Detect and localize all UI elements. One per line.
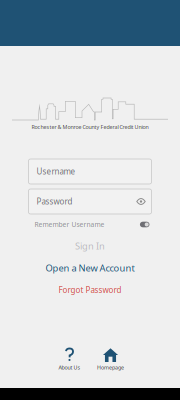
staticText: Forgot Password [58, 285, 121, 295]
button[interactable]: About Us [49, 348, 90, 370]
staticText: Password [36, 196, 72, 207]
button[interactable]: Remember Username [28, 221, 151, 228]
staticText: Open a New Account [45, 262, 134, 274]
staticText: Sign In [75, 240, 105, 252]
button[interactable]: Homepage [90, 348, 131, 370]
staticText: Remember Username [34, 220, 104, 229]
staticText: Homepage [97, 364, 124, 371]
button[interactable]: Forgot Password [28, 285, 151, 295]
button[interactable]: Password [28, 189, 151, 214]
button[interactable]: Username [28, 159, 151, 184]
staticText: Username [36, 166, 75, 177]
button[interactable]: Open a New Account [28, 263, 151, 273]
staticText: About Us [58, 364, 80, 371]
staticText: Rochester & Monroe County Federal Credit… [31, 123, 148, 131]
button[interactable]: Sign In [28, 241, 151, 251]
